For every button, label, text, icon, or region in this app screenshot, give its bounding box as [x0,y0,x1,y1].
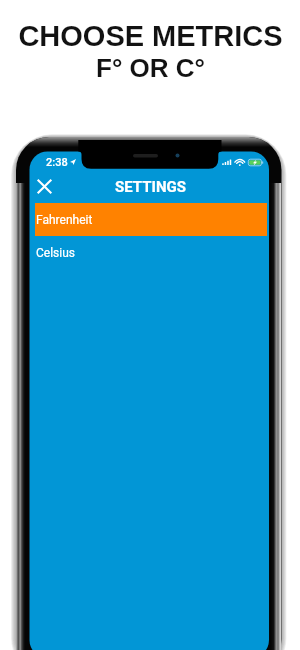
button[interactable]: Celsius [35,236,267,269]
staticText: Celsius [36,246,76,260]
staticText: F° OR C° [96,53,205,82]
staticText: 2:38 [46,156,68,169]
button[interactable]: Fahrenheit [35,203,267,236]
staticText: CHOOSE METRICS [18,20,283,52]
button: Close [30,171,270,203]
button[interactable]: Close [32,174,56,198]
staticText: Fahrenheit [36,213,93,227]
staticText: SETTINGS [115,178,186,196]
